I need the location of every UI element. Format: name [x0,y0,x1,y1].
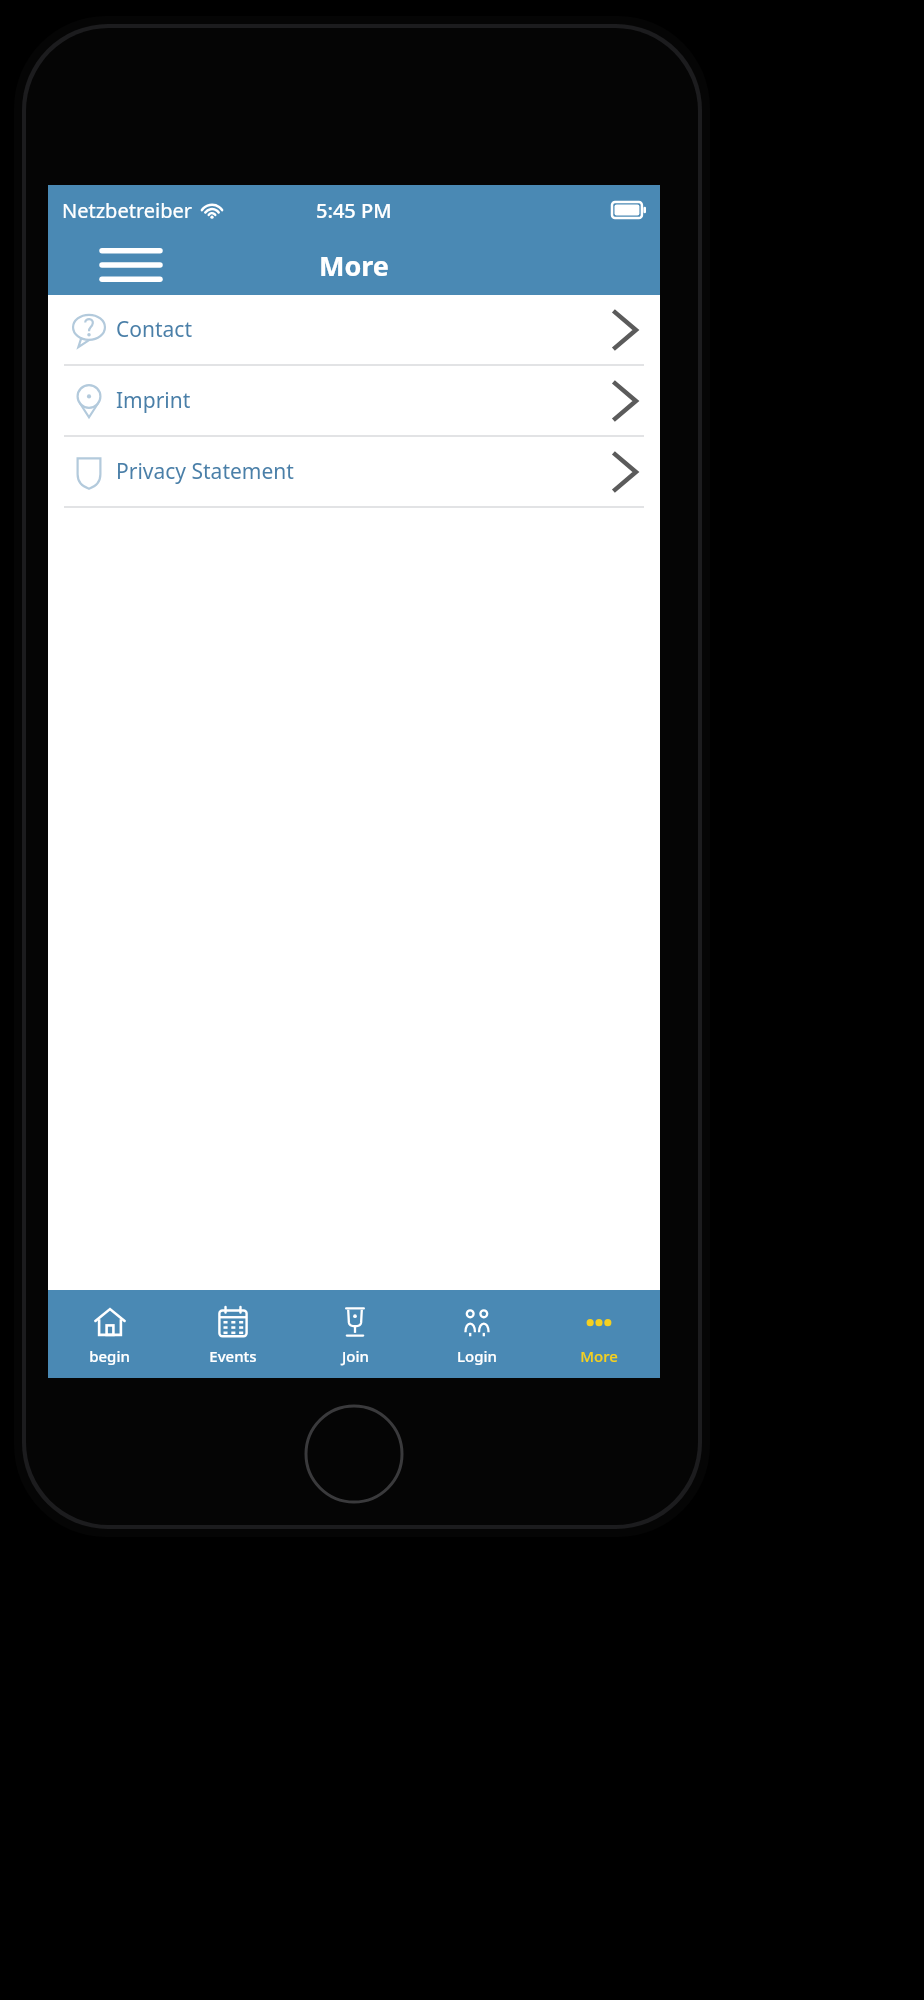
staticText: Privacy Statement [116,457,294,486]
staticText: Login [457,1346,497,1366]
button[interactable]: More [538,1290,660,1378]
button[interactable]: Join [294,1290,416,1378]
staticText: Join [342,1346,369,1366]
button[interactable]: Imprint [48,366,660,435]
staticText: Imprint [116,386,191,415]
staticText: Netzbetreiber [62,197,193,224]
button[interactable]: begin [48,1290,171,1378]
button[interactable]: Events [171,1290,294,1378]
button[interactable]: Privacy Statement [48,437,660,506]
staticText: Events [209,1346,257,1366]
button[interactable]: Contact [48,295,660,364]
button[interactable]: Menu [100,241,162,289]
staticText: 5:45 PM [316,197,392,224]
staticText: More [319,247,389,284]
staticText: Contact [116,315,192,344]
staticText: begin [89,1346,130,1366]
staticText: More [580,1346,618,1366]
button[interactable]: Login [416,1290,538,1378]
